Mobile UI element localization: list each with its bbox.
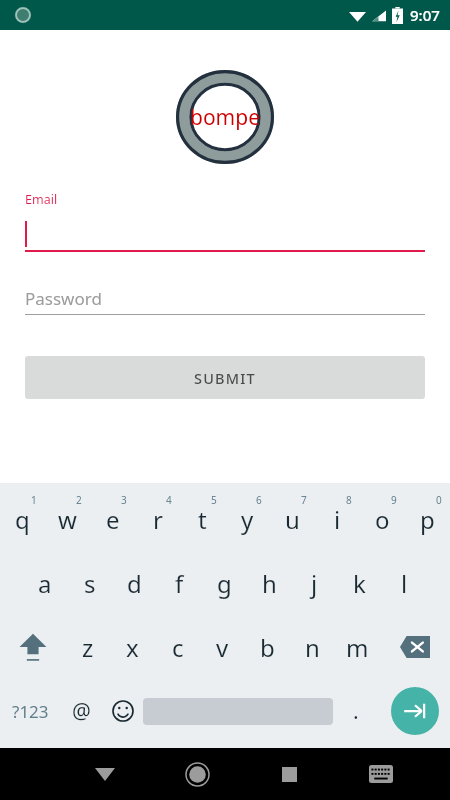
staticText: 5 bbox=[211, 493, 217, 507]
button[interactable]: l bbox=[382, 551, 427, 615]
staticText: i bbox=[334, 503, 341, 536]
staticText: t bbox=[198, 503, 207, 536]
staticText: Email bbox=[25, 191, 58, 208]
staticText: l bbox=[401, 567, 408, 600]
button[interactable]: r bbox=[135, 487, 180, 551]
staticText: 4 bbox=[166, 493, 172, 507]
staticText: j bbox=[311, 567, 318, 600]
staticText: SUBMIT bbox=[194, 368, 256, 388]
button[interactable]: m bbox=[335, 615, 380, 679]
staticText: 8 bbox=[346, 493, 352, 507]
button[interactable]: j bbox=[292, 551, 337, 615]
staticText: r bbox=[153, 503, 163, 536]
staticText: 0 bbox=[436, 493, 442, 507]
staticText: c bbox=[172, 631, 184, 664]
staticText: p bbox=[420, 503, 435, 536]
button[interactable]: Switch keyboard bbox=[335, 748, 427, 800]
staticText: Password bbox=[25, 287, 102, 310]
staticText: o bbox=[375, 503, 390, 536]
button[interactable]: e bbox=[90, 487, 135, 551]
button[interactable]: Back bbox=[59, 748, 151, 800]
button[interactable]: i bbox=[315, 487, 360, 551]
button[interactable]: n bbox=[290, 615, 335, 679]
staticText: m bbox=[346, 631, 369, 664]
button[interactable]: z bbox=[65, 615, 110, 679]
staticText: 9 bbox=[391, 493, 397, 507]
button[interactable]: Password bbox=[25, 282, 425, 315]
staticText: v bbox=[216, 631, 229, 664]
staticText: d bbox=[127, 567, 142, 600]
staticText: 9:07 bbox=[410, 5, 440, 25]
staticText: ?123 bbox=[12, 700, 49, 723]
staticText: 6 bbox=[256, 493, 262, 507]
button[interactable]: Shift bbox=[0, 615, 65, 679]
button[interactable]: SUBMIT bbox=[25, 356, 425, 399]
staticText: w bbox=[58, 503, 77, 536]
staticText: a bbox=[38, 567, 52, 600]
button[interactable]: Home bbox=[151, 748, 243, 800]
staticText: x bbox=[126, 631, 139, 664]
button[interactable]: b bbox=[245, 615, 290, 679]
button[interactable]: ?123 bbox=[0, 679, 61, 743]
button[interactable]: Backspace bbox=[380, 615, 450, 679]
button[interactable]: k bbox=[337, 551, 382, 615]
button[interactable]: Email bbox=[25, 191, 425, 252]
button[interactable]: x bbox=[110, 615, 155, 679]
staticText: s bbox=[84, 567, 96, 600]
staticText: g bbox=[217, 567, 232, 600]
button[interactable]: s bbox=[67, 551, 112, 615]
staticText: . bbox=[353, 697, 359, 726]
button[interactable]: g bbox=[202, 551, 247, 615]
staticText: 1 bbox=[31, 493, 37, 507]
button[interactable]: f bbox=[157, 551, 202, 615]
button[interactable]: a bbox=[22, 551, 67, 615]
button[interactable]: p bbox=[405, 487, 450, 551]
button[interactable]: Emoji bbox=[102, 679, 143, 743]
button[interactable]: Enter bbox=[391, 687, 439, 735]
staticText: n bbox=[305, 631, 320, 664]
button[interactable]: o bbox=[360, 487, 405, 551]
staticText: b bbox=[260, 631, 275, 664]
button[interactable]: c bbox=[155, 615, 200, 679]
button[interactable]: q bbox=[0, 487, 45, 551]
button[interactable]: . bbox=[333, 679, 379, 743]
staticText: e bbox=[106, 503, 120, 536]
staticText: @ bbox=[72, 697, 91, 726]
staticText: q bbox=[15, 503, 30, 536]
staticText: 7 bbox=[301, 493, 307, 507]
button[interactable]: u bbox=[270, 487, 315, 551]
button[interactable]: d bbox=[112, 551, 157, 615]
button[interactable]: h bbox=[247, 551, 292, 615]
button[interactable]: w bbox=[45, 487, 90, 551]
staticText: 3 bbox=[121, 493, 127, 507]
staticText: z bbox=[82, 631, 94, 664]
staticText: h bbox=[262, 567, 277, 600]
button[interactable]: y bbox=[225, 487, 270, 551]
staticText: y bbox=[241, 503, 254, 536]
staticText: k bbox=[353, 567, 366, 600]
staticText: 2 bbox=[76, 493, 82, 507]
button[interactable]: Recents bbox=[243, 748, 335, 800]
button[interactable]: v bbox=[200, 615, 245, 679]
button[interactable]: @ bbox=[61, 679, 102, 743]
staticText: f bbox=[175, 567, 184, 600]
button[interactable]: t bbox=[180, 487, 225, 551]
staticText: u bbox=[285, 503, 300, 536]
staticText: bompe bbox=[190, 103, 261, 132]
